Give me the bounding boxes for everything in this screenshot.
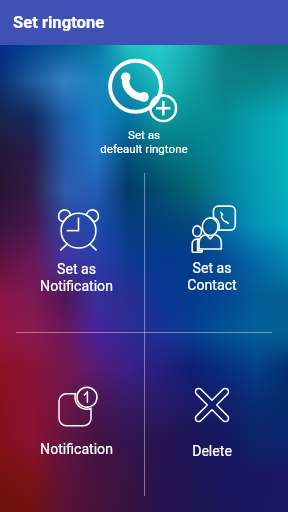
staticText: Set ringtone <box>13 13 105 32</box>
staticText: Set as Contact <box>187 260 237 294</box>
button[interactable]: Delete <box>144 353 280 493</box>
button[interactable]: Notification <box>8 353 144 493</box>
button[interactable]: Set as Contact <box>144 173 280 332</box>
staticText: Set as defeault ringtone <box>100 128 188 156</box>
staticText: Delete <box>192 443 232 460</box>
button[interactable]: Set ringtone <box>0 0 288 45</box>
staticText: Notification <box>40 441 113 458</box>
button[interactable]: Set as defeault ringtone <box>0 45 288 173</box>
staticText: Set as Notification <box>40 261 113 295</box>
button[interactable]: Set as Notification <box>8 173 144 332</box>
